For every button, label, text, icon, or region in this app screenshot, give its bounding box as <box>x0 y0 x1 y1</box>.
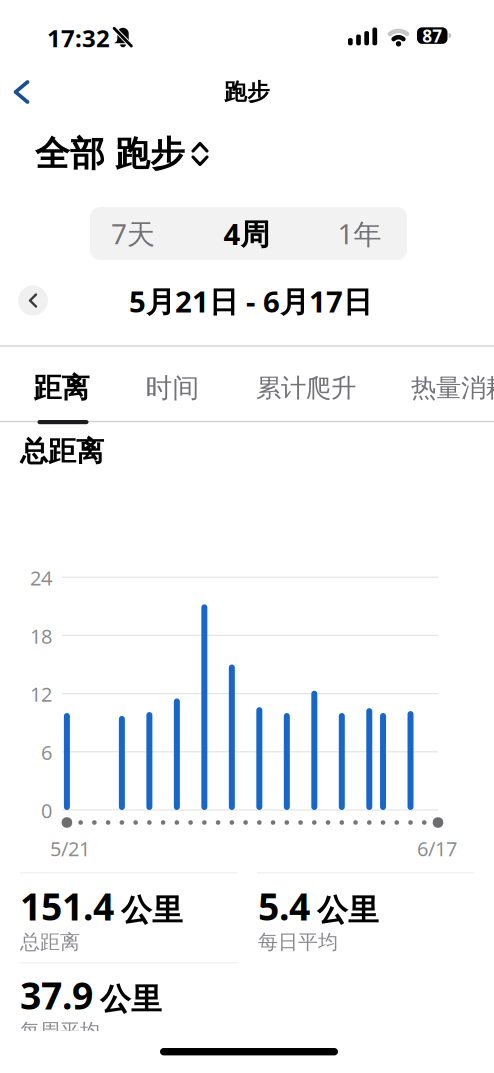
staticText: 1年 <box>337 215 381 252</box>
button[interactable]: 1年 <box>307 207 412 260</box>
button[interactable]: Back <box>6 74 36 110</box>
button[interactable]: Previous period <box>18 285 48 315</box>
staticText: 累计爬升 <box>256 372 356 403</box>
button[interactable]: 4周 <box>194 207 299 260</box>
staticText: 总距离 <box>20 930 80 954</box>
staticText: 87 <box>422 24 442 47</box>
staticText: 12 <box>30 681 52 707</box>
staticText: 37.9 <box>20 970 93 1020</box>
staticText: 总距离 <box>20 434 104 469</box>
staticText: 6 <box>41 739 52 766</box>
staticText: 全部 跑步 <box>35 133 185 175</box>
staticText: 5月21日 - 6月17日 <box>129 281 372 320</box>
staticText: 跑步 <box>224 78 270 106</box>
staticText: 距离 <box>33 371 89 405</box>
staticText: 7天 <box>111 215 155 252</box>
staticText: 每周平均 <box>20 1019 100 1043</box>
button[interactable]: 时间 <box>145 372 199 404</box>
staticText: 18 <box>30 623 52 649</box>
staticText: 0 <box>41 797 52 824</box>
button[interactable]: 热量消耗 <box>411 372 494 403</box>
button[interactable]: 累计爬升 <box>256 372 356 403</box>
staticText: 6/17 <box>417 835 457 862</box>
staticText: 5.4 <box>258 881 310 931</box>
staticText: 24 <box>30 564 52 591</box>
button[interactable]: 距离 <box>33 371 89 405</box>
staticText: 每日平均 <box>258 930 338 954</box>
staticText: 151.4 <box>20 881 114 931</box>
staticText: 热量消耗 <box>411 372 494 403</box>
staticText: 公里 <box>100 980 162 1018</box>
button[interactable]: 7天 <box>80 207 185 260</box>
staticText: 公里 <box>121 891 183 929</box>
staticText: 4周 <box>223 214 269 253</box>
staticText: 公里 <box>317 891 379 929</box>
staticText: 5/21 <box>50 835 90 862</box>
staticText: 时间 <box>145 372 199 404</box>
button[interactable]: 全部 跑步 <box>35 133 209 175</box>
staticText: 17:32 <box>47 22 110 54</box>
